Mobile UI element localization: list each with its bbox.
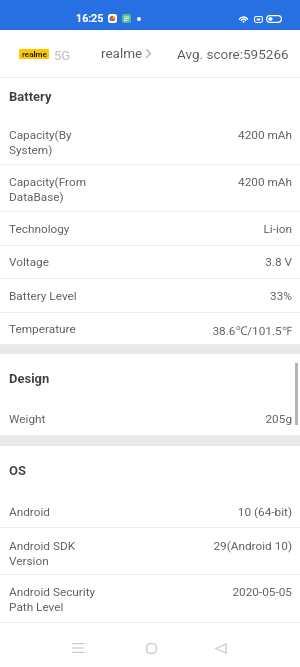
staticText: 16:25 <box>76 12 104 25</box>
staticText: 38.6℃/101.5℉ <box>212 322 292 338</box>
staticText: Capacity(By System) <box>9 128 232 156</box>
staticText: OS <box>9 463 26 478</box>
staticText: 4200 mAh <box>238 175 292 189</box>
button[interactable]: Technology <box>0 212 300 246</box>
button[interactable]: Temperature <box>0 313 300 345</box>
button[interactable]: Capacity(By System) <box>0 118 300 165</box>
staticText: Design <box>9 371 50 386</box>
staticText: Battery Level <box>9 289 264 303</box>
button[interactable]: Android SDK Version <box>0 528 300 575</box>
staticText: 29(Android 10) <box>213 539 292 553</box>
staticText: 205g <box>265 412 292 426</box>
staticText: Capacity(From DataBase) <box>9 175 232 203</box>
button[interactable]: Voltage <box>0 246 300 279</box>
staticText: 33% <box>270 289 292 303</box>
button[interactable]: Weight <box>0 403 300 436</box>
button[interactable]: Android Security Path Level <box>0 575 300 623</box>
staticText: 2020-05-05 <box>232 585 292 599</box>
staticText: Battery <box>9 89 52 104</box>
staticText: 5G <box>54 48 71 63</box>
button[interactable]: Back <box>199 626 243 667</box>
staticText: Android <box>9 505 231 519</box>
staticText: 3.8 V <box>265 255 292 269</box>
staticText: realme <box>22 50 47 59</box>
button[interactable]: Recents <box>56 626 100 667</box>
staticText: Temperature <box>9 322 206 336</box>
button[interactable]: Capacity(From DataBase) <box>0 165 300 212</box>
staticText: realme <box>101 45 143 61</box>
staticText: Weight <box>9 412 259 426</box>
button[interactable]: Android <box>0 495 300 528</box>
staticText: Voltage <box>9 255 259 269</box>
staticText: Technology <box>9 222 257 236</box>
staticText: Avg. score:595266 <box>177 46 289 62</box>
staticText: Android Security Path Level <box>9 585 226 613</box>
staticText: Li-ion <box>263 222 292 236</box>
staticText: Android SDK Version <box>9 539 207 567</box>
button[interactable]: realme <box>101 45 151 61</box>
staticText: 4200 mAh <box>238 128 292 142</box>
button[interactable]: Home <box>129 626 173 667</box>
staticText: 10 (64-bit) <box>237 505 292 519</box>
button[interactable]: Battery Level <box>0 279 300 313</box>
